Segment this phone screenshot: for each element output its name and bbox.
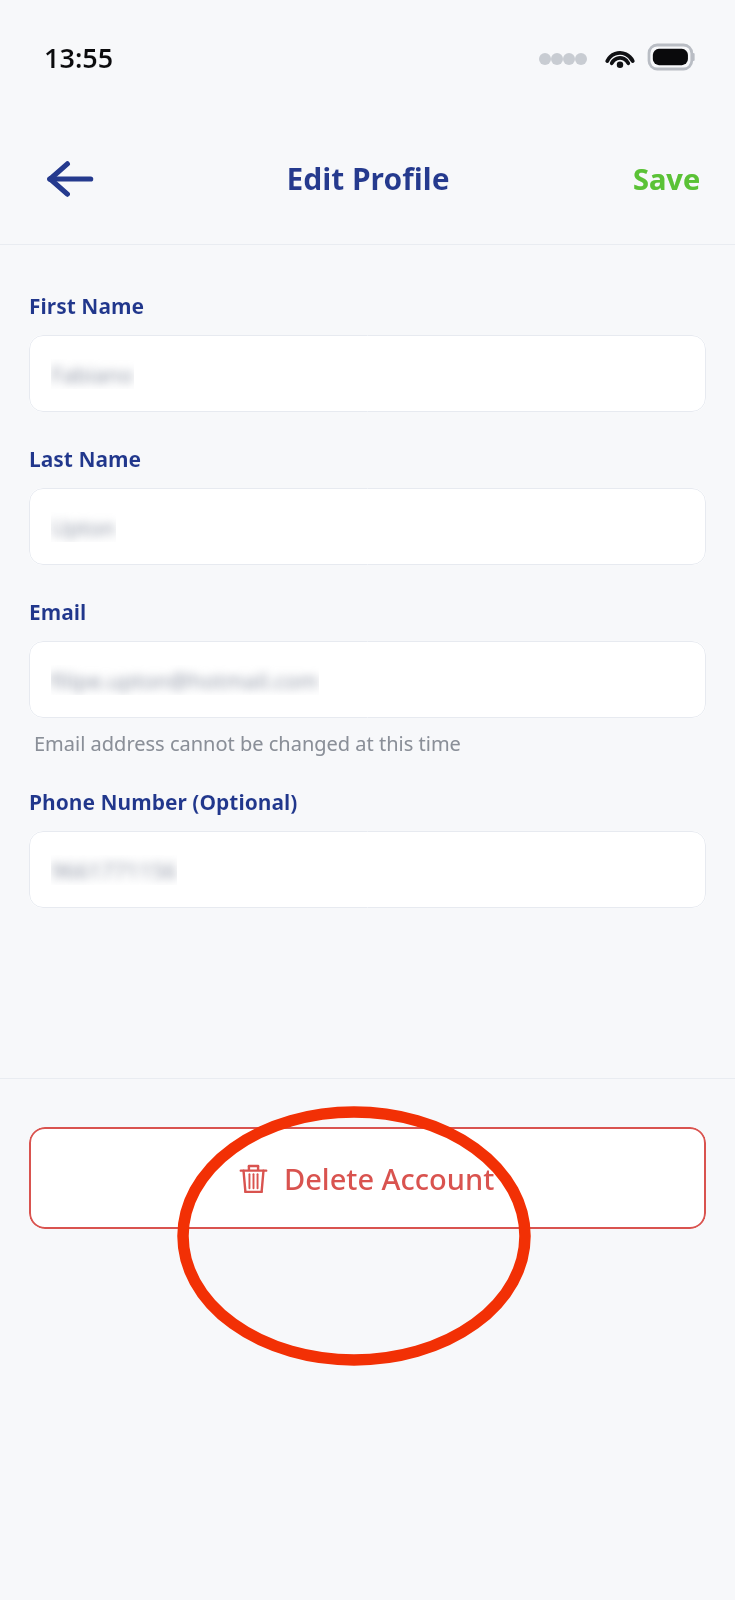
staticText: Upton <box>51 512 116 542</box>
staticText: First Name <box>29 292 144 321</box>
staticText: Edit Profile <box>286 158 450 199</box>
staticText: Save <box>633 159 701 198</box>
staticText: Delete Account <box>284 1159 495 1198</box>
staticText: Email <box>29 598 87 627</box>
button[interactable]: Delete Account <box>29 1127 706 1229</box>
button[interactable]: 9661771156 <box>29 831 706 908</box>
staticText: Phone Number (Optional) <box>29 788 298 817</box>
button[interactable]: Fabiano <box>29 335 706 412</box>
staticText: 13:55 <box>44 39 114 76</box>
staticText: Fabiano <box>51 359 134 389</box>
staticText: Last Name <box>29 445 142 474</box>
button[interactable]: filipe.upton@hotmail.com <box>29 641 706 718</box>
button[interactable]: Save <box>627 151 707 206</box>
button[interactable]: Back <box>26 135 114 223</box>
button[interactable]: Upton <box>29 488 706 565</box>
staticText: filipe.upton@hotmail.com <box>51 665 319 695</box>
staticText: Email address cannot be changed at this … <box>34 730 461 757</box>
staticText: 9661771156 <box>51 855 177 885</box>
